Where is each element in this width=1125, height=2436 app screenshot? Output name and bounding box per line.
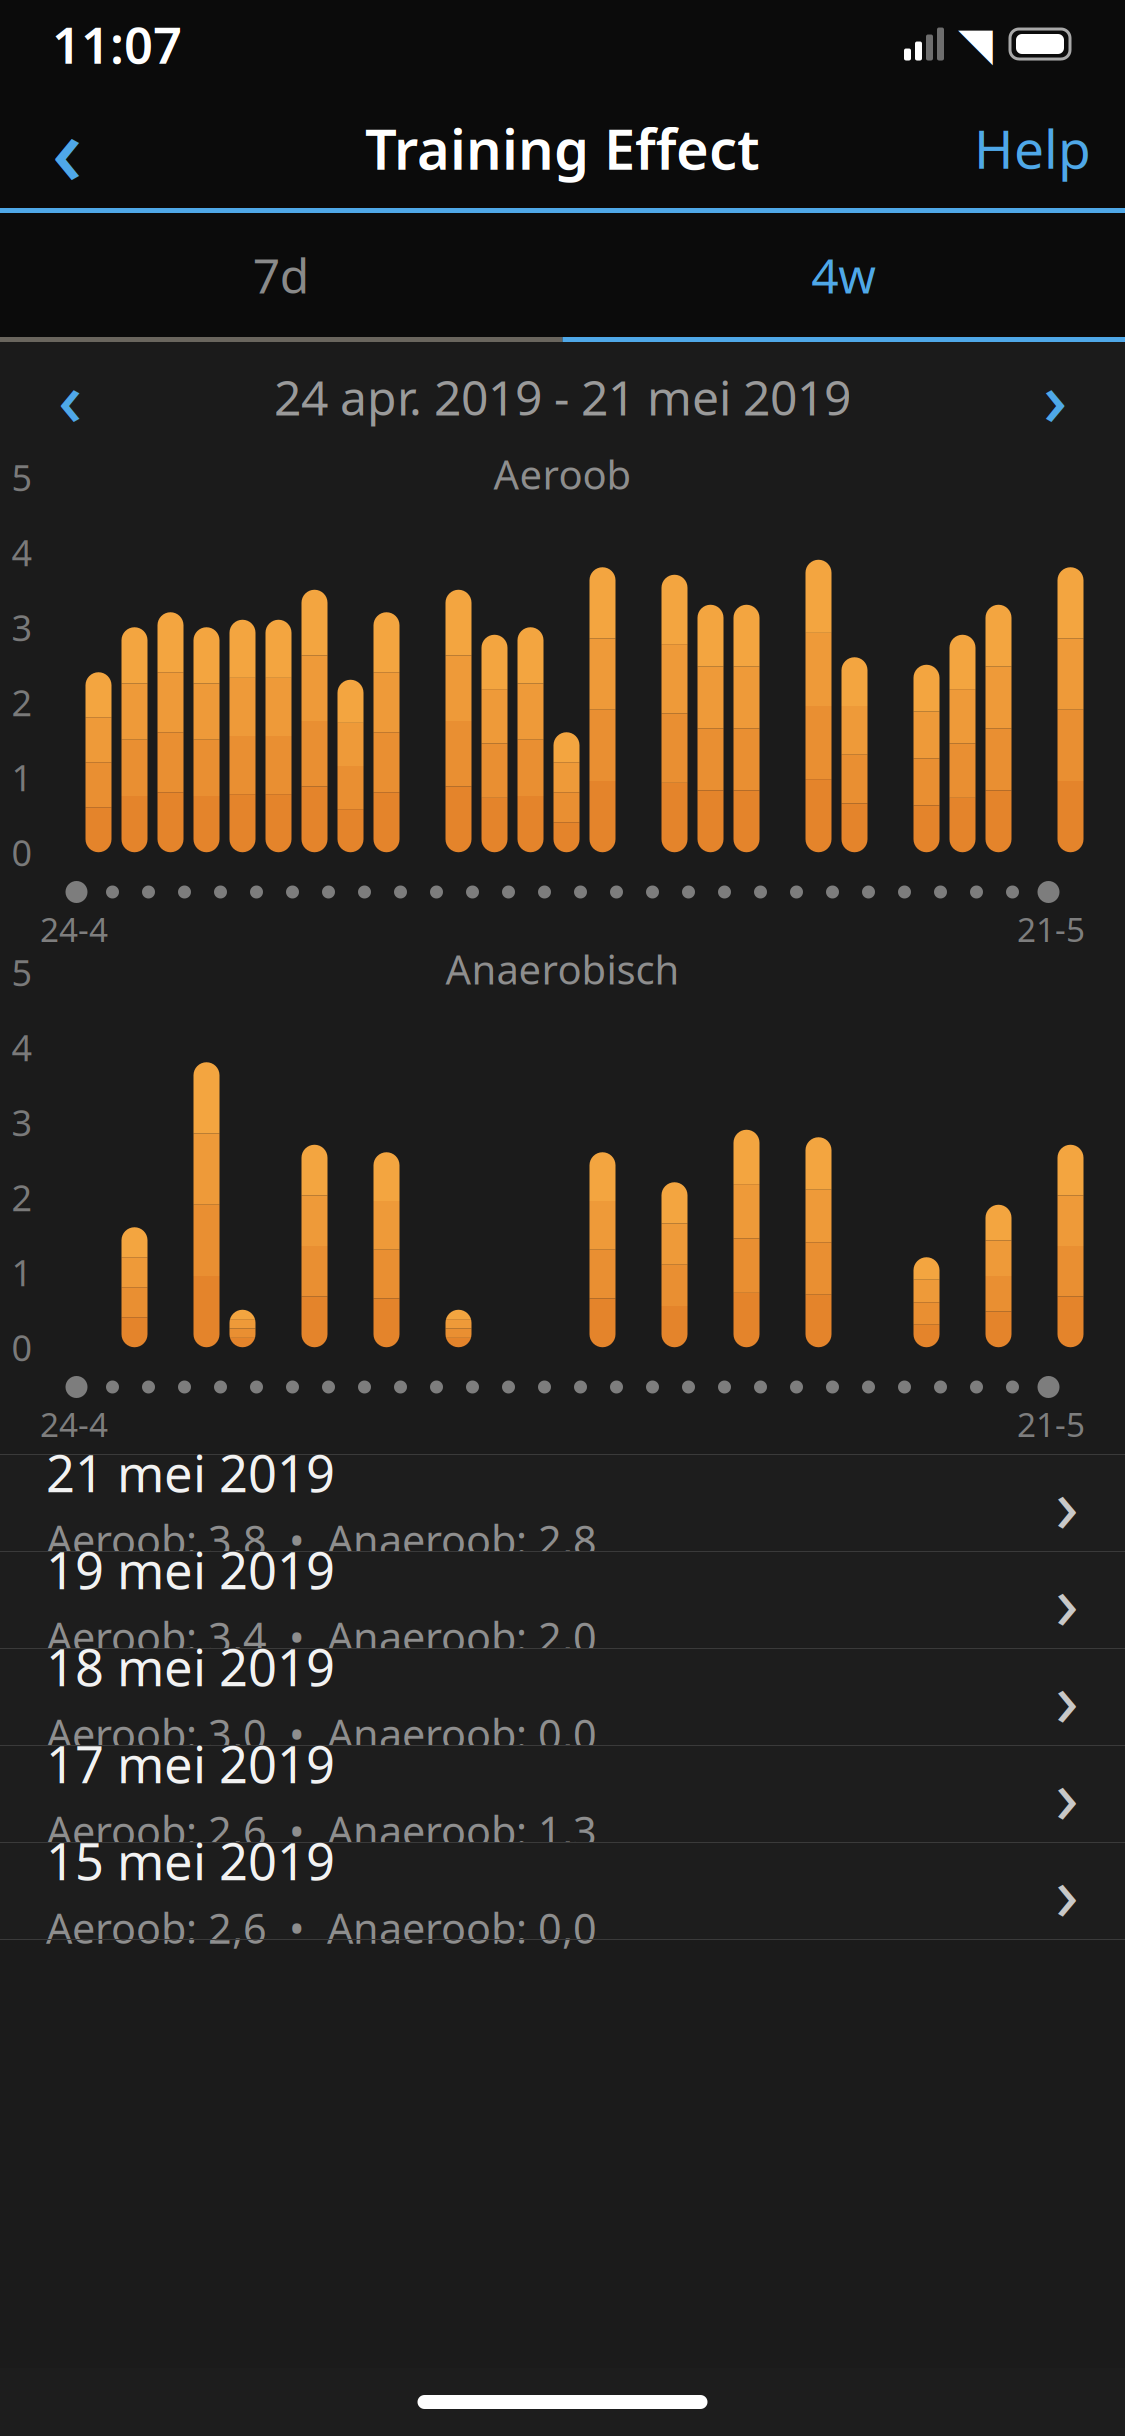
staticText: 18 mei 2019 <box>46 1633 335 1700</box>
staticText: 24-4 <box>40 907 108 951</box>
staticText: Anaeroob: 1,3 <box>327 1803 597 1858</box>
staticText: • <box>267 1900 327 1955</box>
staticText: 5 <box>11 948 32 996</box>
button[interactable]: Help <box>964 105 1101 191</box>
button[interactable]: 18 mei 2019 <box>0 1649 1125 1746</box>
staticText: 24 apr. 2019 - 21 mei 2019 <box>274 365 851 429</box>
staticText: • <box>267 1609 327 1664</box>
staticText: › <box>1055 1743 1079 1845</box>
staticText: 2 <box>11 678 32 726</box>
staticText: 7d <box>253 243 310 307</box>
staticText: Aeroob <box>493 447 631 500</box>
staticText: 24-4 <box>40 1402 108 1446</box>
staticText: Aeroob: 3,8 <box>46 1512 267 1567</box>
staticText: 21-5 <box>1017 1402 1085 1446</box>
staticText: ◥ <box>958 18 993 70</box>
staticText: 19 mei 2019 <box>46 1536 335 1603</box>
staticText: Anaeroob: 0,0 <box>327 1900 597 1955</box>
staticText: 0 <box>11 1323 32 1371</box>
staticText: ‹ <box>51 84 82 212</box>
staticText: 21-5 <box>1017 907 1085 951</box>
staticText: 15 mei 2019 <box>46 1827 335 1894</box>
staticText: Anaerobisch <box>445 942 679 995</box>
staticText: 1 <box>11 1248 32 1296</box>
staticText: › <box>1055 1646 1079 1748</box>
button[interactable]: 21 mei 2019 <box>0 1455 1125 1552</box>
staticText: 3 <box>11 603 32 651</box>
staticText: • <box>267 1706 327 1761</box>
staticText: › <box>1055 1840 1079 1942</box>
staticText: • <box>267 1803 327 1858</box>
staticText: 4 <box>11 528 32 576</box>
staticText: Aeroob: 2,6 <box>46 1900 267 1955</box>
button[interactable]: 15 mei 2019 <box>0 1843 1125 1940</box>
staticText: › <box>1055 1549 1079 1651</box>
staticText: 4 <box>11 1023 32 1071</box>
button[interactable]: 17 mei 2019 <box>0 1746 1125 1843</box>
staticText: 1 <box>11 753 32 801</box>
staticText: › <box>1043 347 1067 447</box>
staticText: 3 <box>11 1098 32 1146</box>
button[interactable]: 19 mei 2019 <box>0 1552 1125 1649</box>
staticText: Aeroob: 2,6 <box>46 1803 267 1858</box>
staticText: 21 mei 2019 <box>46 1439 335 1506</box>
staticText: Anaeroob: 2,0 <box>327 1609 597 1664</box>
staticText: Anaeroob: 0,0 <box>327 1706 597 1761</box>
staticText: Aeroob: 3,0 <box>46 1706 267 1761</box>
staticText: Training Effect <box>365 111 760 185</box>
staticText: Help <box>974 113 1091 183</box>
staticText: 4w <box>811 243 876 307</box>
staticText: Anaeroob: 2,8 <box>327 1512 597 1567</box>
staticText: 17 mei 2019 <box>46 1730 335 1797</box>
staticText: › <box>1055 1452 1079 1554</box>
staticText: Aeroob: 3,4 <box>46 1609 267 1664</box>
button[interactable]: Next period <box>1007 349 1103 445</box>
staticText: ‹ <box>58 347 82 447</box>
staticText: • <box>267 1512 327 1567</box>
staticText: 11:07 <box>52 10 182 78</box>
staticText: 2 <box>11 1173 32 1221</box>
staticText: 0 <box>11 828 32 876</box>
button[interactable]: Back <box>24 105 110 191</box>
button[interactable]: Previous period <box>22 349 118 445</box>
button[interactable]: 4w <box>562 213 1125 337</box>
button[interactable]: 7d <box>0 213 562 337</box>
staticText: 5 <box>11 453 32 501</box>
